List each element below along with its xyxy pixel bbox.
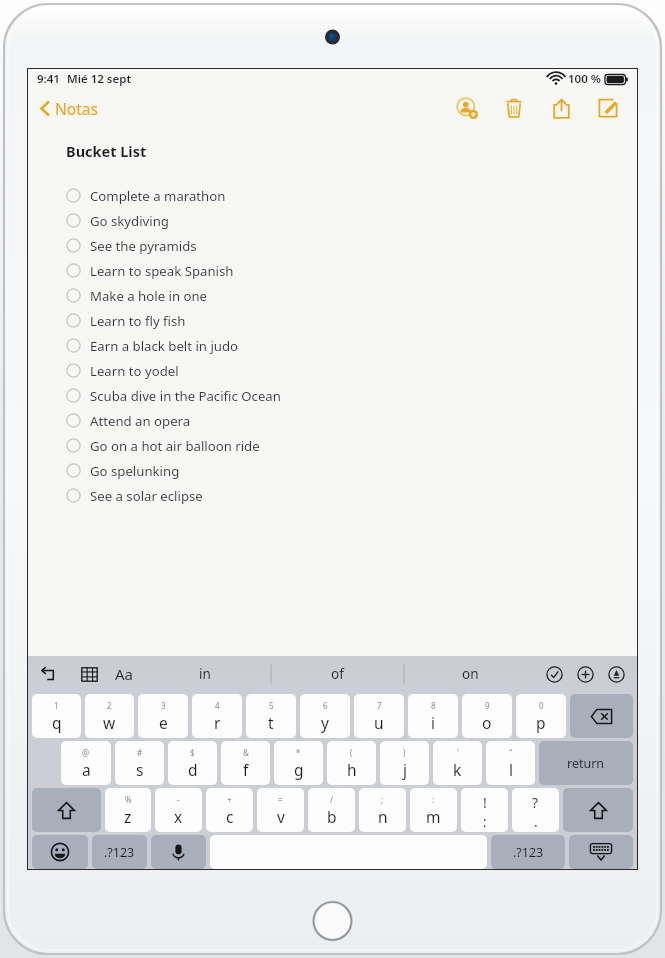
staticText: Mié 12 sept	[67, 71, 132, 87]
staticText: t	[268, 712, 274, 733]
button[interactable]: &	[221, 741, 270, 785]
button[interactable]: Markup	[603, 661, 629, 687]
staticText: a	[82, 759, 91, 780]
staticText: :	[432, 794, 435, 805]
button[interactable]: !	[461, 788, 508, 832]
staticText: h	[347, 759, 357, 780]
button[interactable]: Delete	[501, 95, 527, 121]
button[interactable]: Earn a black belt in judo	[66, 333, 637, 358]
button[interactable]: Checklist	[541, 661, 567, 687]
staticText: +	[227, 794, 232, 805]
button[interactable]: Format	[109, 659, 139, 689]
staticText: (	[350, 747, 353, 758]
button[interactable]: return	[539, 741, 633, 785]
staticText: g	[294, 759, 304, 780]
button[interactable]: Hide keyboard	[569, 835, 633, 869]
button[interactable]: in	[139, 656, 271, 692]
staticText: m	[426, 806, 441, 827]
staticText: =	[278, 794, 283, 805]
button[interactable]: Compose	[595, 95, 621, 121]
button[interactable]: 3	[138, 694, 188, 738]
button[interactable]: Share	[548, 95, 574, 121]
button[interactable]: Notas	[36, 94, 102, 123]
button[interactable]: :	[410, 788, 457, 832]
button[interactable]: )	[380, 741, 429, 785]
button[interactable]: of	[271, 656, 404, 692]
button[interactable]: Go on a hot air balloon ride	[66, 433, 637, 458]
button[interactable]: Undo	[34, 659, 64, 689]
staticText: "	[509, 747, 513, 758]
button[interactable]: Go skydiving	[66, 208, 637, 233]
button[interactable]: Add people	[454, 95, 480, 121]
button[interactable]: Emoji	[32, 835, 88, 869]
staticText: y	[321, 712, 329, 733]
button[interactable]: 8	[408, 694, 458, 738]
button[interactable]: =	[257, 788, 304, 832]
button[interactable]: Dictate	[151, 835, 206, 869]
staticText: /	[330, 794, 333, 805]
button[interactable]: #	[115, 741, 164, 785]
button[interactable]: ;	[359, 788, 406, 832]
button[interactable]: See a solar eclipse	[66, 483, 637, 508]
button[interactable]: Scuba dive in the Pacific Ocean	[66, 383, 637, 408]
staticText: 1	[54, 700, 59, 711]
staticText: See a solar eclipse	[90, 487, 203, 505]
button[interactable]: $	[168, 741, 217, 785]
button[interactable]: "	[486, 741, 535, 785]
button[interactable]: -	[155, 788, 202, 832]
button[interactable]: Learn to fly fish	[66, 308, 637, 333]
button[interactable]: 0	[516, 694, 566, 738]
button[interactable]: Attend an opera	[66, 408, 637, 433]
button[interactable]: Learn to yodel	[66, 358, 637, 383]
button[interactable]: See the pyramids	[66, 233, 637, 258]
button[interactable]: .?123	[92, 835, 147, 869]
button[interactable]: Learn to speak Spanish	[66, 258, 637, 283]
button[interactable]: 7	[354, 694, 404, 738]
button[interactable]: '	[433, 741, 482, 785]
button[interactable]: /	[308, 788, 355, 832]
button[interactable]: 1	[32, 694, 81, 738]
button[interactable]: Go spelunking	[66, 458, 637, 483]
button[interactable]: ?	[512, 788, 559, 832]
button[interactable]: Table	[75, 660, 103, 688]
staticText: Go on a hot air balloon ride	[90, 437, 260, 455]
staticText: .	[534, 812, 538, 827]
staticText: 4	[215, 700, 220, 711]
button[interactable]: 9	[462, 694, 512, 738]
button[interactable]: on	[404, 656, 537, 692]
staticText: e	[159, 712, 168, 733]
button[interactable]: +	[206, 788, 253, 832]
staticText: -	[177, 794, 180, 805]
button[interactable]: %	[105, 788, 151, 832]
staticText: Scuba dive in the Pacific Ocean	[90, 387, 281, 405]
staticText: 5	[269, 700, 274, 711]
button[interactable]: .?123	[491, 835, 565, 869]
button[interactable]: Add	[572, 661, 598, 687]
staticText: '	[457, 747, 459, 758]
button[interactable]: Shift	[32, 788, 101, 832]
button[interactable]: (	[327, 741, 376, 785]
staticText: 3	[161, 700, 166, 711]
button[interactable]: 5	[246, 694, 296, 738]
staticText: Attend an opera	[90, 412, 191, 430]
staticText: 100 %	[568, 71, 601, 87]
button[interactable]: Shift	[563, 788, 633, 832]
staticText: Learn to yodel	[90, 362, 179, 380]
staticText: l	[509, 759, 513, 780]
button[interactable]: 4	[192, 694, 242, 738]
staticText: w	[103, 712, 116, 733]
staticText: f	[243, 759, 249, 780]
button[interactable]: @	[61, 741, 111, 785]
staticText: Earn a black belt in judo	[90, 337, 239, 355]
staticText: 9	[485, 700, 490, 711]
button[interactable]: *	[274, 741, 323, 785]
button[interactable]: Complete a marathon	[66, 183, 637, 208]
staticText: return	[567, 755, 605, 772]
button[interactable]: 6	[300, 694, 350, 738]
staticText: in	[199, 665, 211, 683]
staticText: on	[462, 665, 479, 683]
button[interactable]: Make a hole in one	[66, 283, 637, 308]
button[interactable]: 2	[85, 694, 134, 738]
button[interactable]: Backspace	[570, 694, 633, 738]
